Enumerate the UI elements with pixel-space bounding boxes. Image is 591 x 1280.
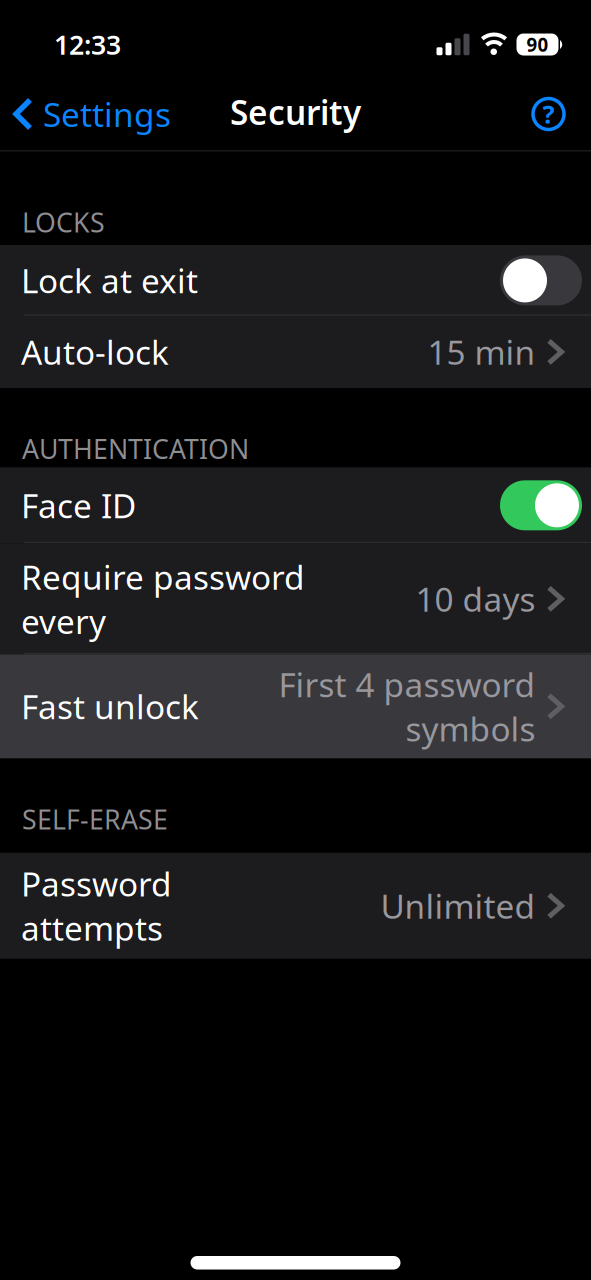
staticText: Auto-lock [21, 330, 169, 374]
button[interactable]: Help [531, 96, 591, 131]
staticText: LOCKS [22, 204, 105, 240]
staticText: SELF-ERASE [22, 801, 168, 837]
staticText: Security [230, 90, 361, 134]
staticText: 15 min [427, 330, 535, 374]
button[interactable]: Password attempts [0, 853, 591, 959]
staticText: Lock at exit [21, 258, 198, 303]
button[interactable]: Require password every [0, 543, 591, 654]
button[interactable]: Face ID [500, 480, 582, 530]
staticText: Face ID [21, 483, 136, 527]
staticText: ? [542, 97, 554, 131]
button[interactable]: Auto-lock [0, 316, 591, 388]
button[interactable]: Settings [0, 92, 171, 136]
staticText: 12:33 [54, 27, 121, 62]
staticText: AUTHENTICATION [22, 431, 249, 466]
staticText: First 4 password symbols [278, 662, 535, 751]
staticText: Settings [43, 92, 171, 136]
staticText: Unlimited [380, 884, 535, 928]
staticText: Password attempts [21, 861, 172, 950]
staticText: 10 days [415, 577, 535, 621]
staticText: 90 [526, 32, 548, 57]
staticText: Require password every [21, 555, 305, 643]
button[interactable]: Fast unlock [0, 654, 591, 758]
staticText: Fast unlock [21, 684, 199, 728]
button[interactable]: Lock at exit [500, 255, 582, 305]
